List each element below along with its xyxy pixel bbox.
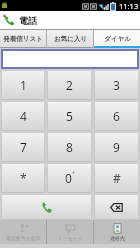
staticText: 5: [66, 108, 73, 124]
staticText: 連絡先: [110, 235, 125, 241]
staticText: 電話: [19, 15, 37, 26]
button[interactable]: 7: [1, 132, 45, 162]
button[interactable]: 5: [47, 101, 92, 131]
button[interactable]: 9: [94, 132, 139, 162]
staticText: *: [20, 170, 27, 186]
button[interactable]: Call: [1, 194, 92, 220]
staticText: 3: [113, 77, 120, 93]
button[interactable]: [2, 50, 138, 68]
staticText: 電話番号を追加: [5, 235, 41, 241]
staticText: 11:13: [119, 1, 139, 11]
staticText: 発着信リスト: [3, 35, 43, 43]
button[interactable]: メッセージ: [47, 220, 93, 244]
staticText: 7: [20, 139, 27, 155]
button[interactable]: 4: [1, 101, 45, 131]
staticText: 6: [113, 108, 120, 124]
button[interactable]: #: [94, 163, 139, 193]
button[interactable]: 0: [47, 163, 92, 193]
staticText: 8: [66, 139, 73, 155]
button[interactable]: お気に入り: [47, 30, 93, 48]
staticText: ダイヤル: [104, 35, 131, 43]
staticText: +: [72, 170, 75, 177]
button[interactable]: 8: [47, 132, 92, 162]
staticText: お気に入り: [54, 35, 87, 43]
button[interactable]: 電話番号を追加: [0, 220, 46, 244]
staticText: 0: [65, 170, 72, 186]
button[interactable]: 6: [94, 101, 139, 131]
button[interactable]: Delete: [94, 194, 139, 220]
staticText: 1: [20, 77, 27, 93]
button[interactable]: 2: [47, 70, 92, 100]
staticText: #: [113, 170, 121, 186]
staticText: 2: [66, 77, 73, 93]
button[interactable]: 3: [94, 70, 139, 100]
button[interactable]: 連絡先: [94, 220, 140, 244]
staticText: 9: [113, 139, 120, 155]
button[interactable]: *: [1, 163, 45, 193]
button[interactable]: 1: [1, 70, 45, 100]
staticText: 4: [20, 108, 27, 124]
button[interactable]: 発着信リスト: [0, 30, 46, 48]
button[interactable]: ダイヤル: [94, 30, 140, 48]
staticText: メッセージ: [57, 235, 83, 241]
